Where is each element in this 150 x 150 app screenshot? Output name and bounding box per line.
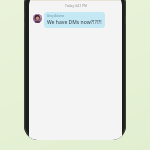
staticText: Amy Adams: [47, 14, 65, 18]
staticText: We have DMs now?!?!?!: [47, 19, 102, 26]
button[interactable]: Amy Adams: [47, 14, 102, 26]
button[interactable]: [29, 0, 122, 1]
other: Profile photo: [33, 14, 42, 23]
button[interactable]: Profile photo: [33, 12, 118, 28]
staticText: Today 4:41 PM: [65, 4, 87, 8]
